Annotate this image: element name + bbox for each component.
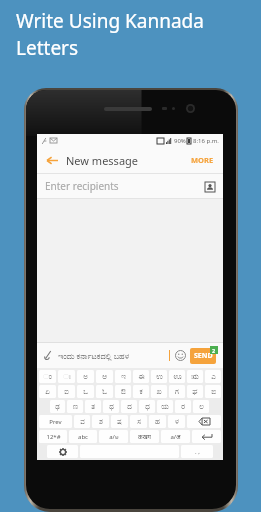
button[interactable]: ಳ	[168, 415, 185, 428]
staticText: abc	[78, 433, 88, 441]
staticText: Letters	[16, 35, 79, 61]
button[interactable]: ಥ	[103, 400, 119, 413]
staticText: ಯ	[161, 403, 169, 410]
staticText: ಗ	[175, 388, 179, 395]
button[interactable]: Attach	[42, 349, 55, 362]
staticText: ಇ	[121, 373, 126, 380]
staticText: New message	[66, 153, 139, 168]
staticText: कखग	[138, 433, 151, 441]
button[interactable]: Add contact	[204, 181, 215, 192]
button[interactable]: ಎ	[205, 370, 221, 383]
staticText: ಊ	[173, 373, 182, 380]
button[interactable]: ಷ	[111, 415, 128, 428]
button[interactable]: MORE	[189, 153, 216, 167]
button[interactable]: SEND	[190, 348, 216, 364]
staticText: ಇಂದು ಕರ್ನಾಟಕದಲ್ಲಿ ಬಹಳ	[58, 350, 169, 361]
button[interactable]: ಙ	[205, 385, 221, 398]
staticText: ಣ	[73, 403, 78, 410]
staticText: ಥ	[109, 403, 114, 410]
button[interactable]: Enter	[192, 430, 221, 443]
button[interactable]: 12*#	[39, 430, 67, 443]
staticText: ಏ	[45, 388, 50, 395]
button[interactable]: abc	[69, 430, 97, 443]
button[interactable]: ಸ	[130, 415, 147, 428]
staticText: ಆ	[102, 373, 107, 380]
button[interactable]: ಢ	[50, 400, 65, 413]
button[interactable]: ದ	[121, 400, 137, 413]
button[interactable]: a/अ	[161, 430, 190, 443]
button[interactable]: ಶ	[92, 415, 109, 428]
button[interactable]: . ,	[181, 445, 213, 458]
button[interactable]: Emoji	[174, 349, 187, 362]
staticText: ಖ	[156, 388, 162, 395]
staticText: ಉ	[156, 373, 163, 380]
button[interactable]: ಆ	[96, 370, 113, 383]
staticText: ಐ	[64, 388, 69, 395]
staticText: a/अ	[170, 433, 181, 441]
button[interactable]: a/ಅ	[99, 430, 128, 443]
staticText: Write Using Kannada	[16, 8, 204, 34]
staticText: ತ	[91, 403, 95, 410]
button[interactable]: कखग	[130, 430, 159, 443]
staticText: ಎ	[211, 373, 216, 380]
button[interactable]: ಐ	[58, 385, 75, 398]
button[interactable]: ಹ	[149, 415, 166, 428]
staticText: ವ	[80, 418, 85, 425]
staticText: 8:16 p.m.	[193, 137, 219, 145]
button[interactable]: ಒ	[77, 385, 94, 398]
button[interactable]: Backspace	[187, 415, 221, 428]
staticText: ಸ	[137, 418, 141, 425]
staticText: SEND	[194, 351, 213, 361]
staticText: ಙ	[211, 388, 216, 395]
button[interactable]: ಧ	[139, 400, 155, 413]
staticText: ಲ	[199, 403, 204, 410]
button[interactable]: ರ	[175, 400, 191, 413]
staticText: a/ಅ	[109, 433, 119, 441]
button[interactable]: ಯ	[157, 400, 173, 413]
staticText: ಷ	[117, 418, 122, 425]
button[interactable]: ಂ	[39, 370, 56, 383]
staticText: ಈ	[138, 373, 145, 380]
staticText: ಓ	[102, 388, 107, 395]
staticText: ಋ	[191, 373, 199, 380]
staticText: ಢ	[55, 403, 60, 410]
button[interactable]: ಗ	[169, 385, 185, 398]
button[interactable]: ವ	[74, 415, 90, 428]
staticText: 90%	[174, 137, 186, 145]
staticText: ಧ	[145, 403, 150, 410]
button[interactable]: ಉ	[151, 370, 167, 383]
staticText: ಔ	[121, 388, 126, 395]
button[interactable]: ಃ	[58, 370, 75, 383]
staticText: ಘ	[192, 388, 198, 395]
button[interactable]: ಊ	[169, 370, 185, 383]
button[interactable]: ಕ	[133, 385, 149, 398]
button[interactable]: ಓ	[96, 385, 113, 398]
staticText: MORE	[191, 155, 214, 165]
button[interactable]: ಣ	[67, 400, 83, 413]
staticText: ದ	[127, 403, 132, 410]
button[interactable]: Enter recipients	[37, 174, 223, 198]
button[interactable]: ಔ	[115, 385, 131, 398]
staticText: ಳ	[175, 418, 179, 425]
staticText: ಂ	[43, 373, 52, 380]
button[interactable]: Prev	[39, 415, 72, 428]
staticText: ಕ	[139, 388, 143, 395]
button[interactable]: ಏ	[39, 385, 56, 398]
staticText: ಶ	[99, 418, 103, 425]
button[interactable]: ಅ	[77, 370, 94, 383]
button[interactable]: ಖ	[151, 385, 167, 398]
button[interactable]: ಘ	[187, 385, 203, 398]
button[interactable]: ಲ	[193, 400, 209, 413]
button[interactable]: Back	[44, 152, 60, 168]
staticText: Prev	[49, 418, 62, 426]
button[interactable]: ಋ	[187, 370, 203, 383]
staticText: ರ	[181, 403, 185, 410]
button[interactable]: ತ	[85, 400, 101, 413]
button[interactable]: ಈ	[133, 370, 149, 383]
staticText: . ,	[195, 448, 200, 456]
staticText: 2	[212, 347, 216, 354]
button[interactable]: ಇ	[115, 370, 131, 383]
staticText: ಹ	[155, 418, 160, 425]
button[interactable]: Settings	[47, 445, 78, 458]
